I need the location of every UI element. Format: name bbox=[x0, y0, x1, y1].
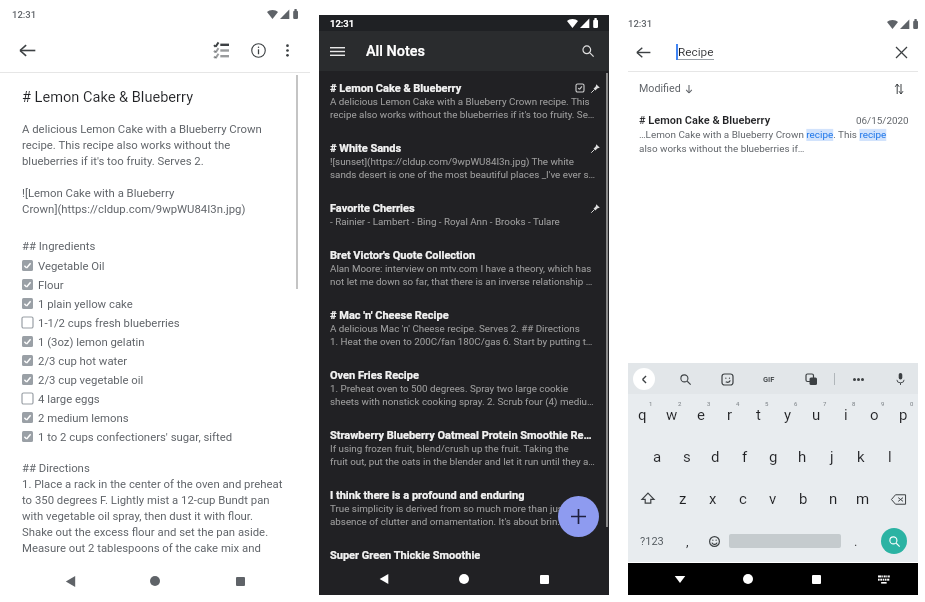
button[interactable]: k bbox=[846, 436, 875, 478]
button[interactable]: Vegetable Oil bbox=[22, 256, 302, 275]
button[interactable]: Hide keyboard bbox=[869, 564, 899, 594]
staticText: True simplicity is derived from so much … bbox=[330, 503, 583, 516]
button[interactable]: Home bbox=[733, 564, 763, 594]
button[interactable]: Home bbox=[140, 566, 170, 596]
button[interactable]: Checklist bbox=[207, 36, 235, 64]
button[interactable]: l bbox=[875, 436, 904, 478]
button[interactable]: 4 large eggs bbox=[22, 389, 302, 408]
staticText: recipe also works without the blueberrie… bbox=[330, 109, 595, 122]
button[interactable]: b bbox=[788, 478, 818, 520]
staticText: h bbox=[798, 448, 807, 466]
button[interactable]: r bbox=[715, 394, 744, 436]
button[interactable]: Recents bbox=[529, 564, 559, 594]
staticText: 1. Heat the oven to 200C/fan 180C/gas 6.… bbox=[330, 336, 593, 349]
button[interactable]: Favorite Cherries bbox=[330, 200, 600, 247]
button[interactable]: 1 (3oz) lemon gelatin bbox=[22, 332, 302, 351]
button[interactable]: e bbox=[686, 394, 715, 436]
button[interactable]: n bbox=[818, 478, 848, 520]
button[interactable]: y bbox=[773, 394, 802, 436]
button[interactable]: Back bbox=[369, 564, 399, 594]
button[interactable]: Recents bbox=[801, 564, 831, 594]
button[interactable]: Translate bbox=[800, 368, 822, 390]
button[interactable]: i bbox=[831, 394, 860, 436]
button[interactable]: # Lemon Cake & Blueberry bbox=[330, 80, 600, 140]
button[interactable]: GIF bbox=[758, 368, 780, 390]
button[interactable]: Sort order bbox=[889, 80, 909, 97]
button[interactable]: 2 medium lemons bbox=[22, 408, 302, 427]
button[interactable]: p bbox=[889, 394, 918, 436]
button[interactable]: Back bbox=[55, 566, 85, 596]
staticText: sheets with nonstick cooking spray. 2. S… bbox=[330, 396, 594, 409]
staticText: 1. Preheat oven to 500 degrees. Spray tw… bbox=[330, 383, 569, 396]
button[interactable]: , bbox=[675, 520, 700, 562]
staticText: d bbox=[711, 448, 720, 466]
staticText: 2/3 cup hot water bbox=[38, 354, 128, 367]
button[interactable]: Backspace bbox=[878, 478, 918, 520]
button[interactable]: 2/3 cup vegetable oil bbox=[22, 370, 302, 389]
button[interactable]: Super Green Thickie Smoothie bbox=[330, 547, 600, 581]
button[interactable]: f bbox=[730, 436, 759, 478]
button[interactable]: s bbox=[672, 436, 701, 478]
staticText: i bbox=[844, 406, 848, 424]
staticText: 12:31 bbox=[628, 18, 653, 29]
button[interactable]: h bbox=[788, 436, 817, 478]
button[interactable]: Home bbox=[449, 564, 479, 594]
button[interactable]: Flour bbox=[22, 275, 302, 294]
staticText: m bbox=[856, 490, 870, 508]
button[interactable]: q bbox=[628, 394, 657, 436]
button[interactable]: More options bbox=[274, 37, 300, 63]
staticText: # White Sands bbox=[330, 142, 584, 155]
button[interactable]: Bret Victor's Quote Collection bbox=[330, 247, 600, 307]
button[interactable]: u bbox=[802, 394, 831, 436]
button[interactable]: Back bbox=[12, 35, 42, 65]
button[interactable]: m bbox=[848, 478, 878, 520]
staticText: a bbox=[653, 448, 662, 466]
button[interactable]: Back bbox=[633, 368, 655, 390]
button[interactable]: Shift bbox=[628, 478, 668, 520]
staticText: Oven Fries Recipe bbox=[330, 369, 600, 382]
button[interactable]: Search bbox=[870, 520, 918, 562]
button[interactable]: Strawberry Blueberry Oatmeal Protein Smo… bbox=[330, 427, 600, 487]
button[interactable]: Oven Fries Recipe bbox=[330, 367, 600, 427]
button[interactable]: j bbox=[817, 436, 846, 478]
button[interactable]: 1 to 2 cups confectioners' sugar, sifted bbox=[22, 427, 302, 446]
button[interactable]: d bbox=[701, 436, 730, 478]
button[interactable]: w bbox=[657, 394, 686, 436]
button[interactable]: c bbox=[728, 478, 758, 520]
button[interactable]: 2/3 cup hot water bbox=[22, 351, 302, 370]
button[interactable]: Modified bbox=[639, 82, 693, 95]
button[interactable]: # Mac 'n' Cheese Recipe bbox=[330, 307, 600, 367]
button[interactable]: Menu bbox=[325, 39, 349, 63]
button[interactable]: Emoji bbox=[700, 520, 729, 562]
button[interactable]: z bbox=[668, 478, 698, 520]
button[interactable]: Clear search bbox=[888, 39, 914, 65]
button[interactable]: a bbox=[642, 436, 672, 478]
button[interactable]: Voice input bbox=[889, 368, 911, 390]
button[interactable]: 1-1/2 cups fresh blueberries bbox=[22, 313, 302, 332]
button[interactable]: Back bbox=[628, 37, 658, 67]
button[interactable]: Back bbox=[665, 564, 695, 594]
button[interactable]: Search bbox=[575, 38, 601, 64]
button[interactable]: Info bbox=[244, 36, 272, 64]
staticText: 1. Place a rack in the center of the ove… bbox=[22, 477, 283, 493]
button[interactable]: New note bbox=[558, 496, 599, 537]
button[interactable]: Stickers bbox=[716, 368, 738, 390]
button[interactable]: Recents bbox=[225, 566, 255, 596]
button[interactable]: . bbox=[841, 520, 870, 562]
button[interactable]: # White Sands bbox=[330, 140, 600, 200]
button[interactable]: # Lemon Cake & Blueberry bbox=[639, 114, 909, 155]
button[interactable]: o bbox=[860, 394, 889, 436]
button[interactable]: t bbox=[744, 394, 773, 436]
button[interactable]: g bbox=[759, 436, 788, 478]
button[interactable]: v bbox=[758, 478, 788, 520]
button[interactable]: More options bbox=[847, 368, 869, 390]
button[interactable]: Search bbox=[674, 368, 696, 390]
button[interactable]: 1 plain yellow cake bbox=[22, 294, 302, 313]
button[interactable]: I think there is a profound and enduring bbox=[330, 487, 600, 547]
button[interactable]: ?123 bbox=[628, 520, 675, 562]
button[interactable]: x bbox=[698, 478, 728, 520]
staticText: # Lemon Cake & Blueberry bbox=[639, 114, 771, 127]
staticText: not let me down so far, that there is an… bbox=[330, 276, 593, 289]
staticText: , bbox=[686, 534, 689, 549]
